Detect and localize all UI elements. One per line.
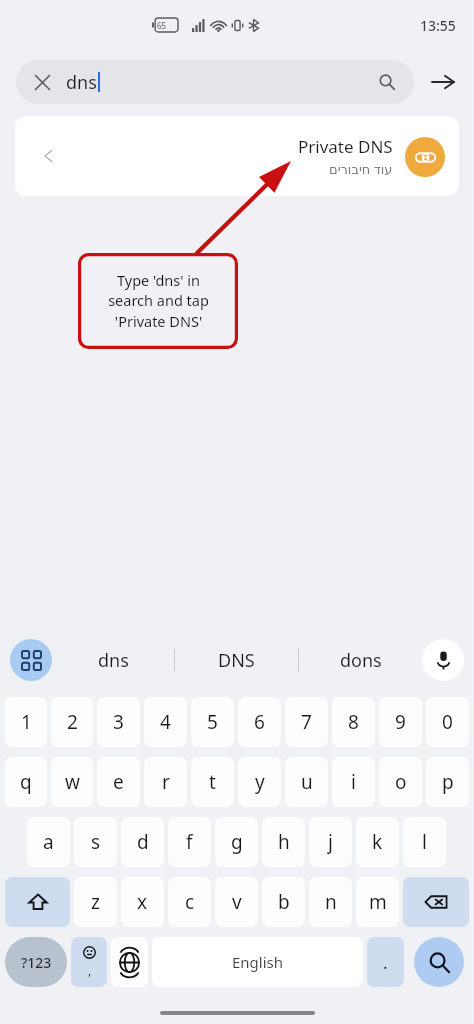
button[interactable]: ?123 <box>5 937 67 987</box>
staticText: עוד חיבורים <box>329 160 393 178</box>
button[interactable]: w <box>51 757 93 807</box>
button[interactable]: Clear <box>16 60 414 104</box>
button[interactable]: l <box>403 817 446 867</box>
button[interactable]: x <box>121 877 164 927</box>
staticText: ?123 <box>21 953 52 972</box>
button[interactable]: Clear <box>30 70 54 94</box>
button[interactable]: o <box>379 757 422 807</box>
staticText: a <box>43 829 54 855</box>
button[interactable]: 3 <box>97 697 140 747</box>
button[interactable]: DNS <box>175 628 298 692</box>
staticText: y <box>255 769 265 795</box>
staticText: o <box>395 769 407 795</box>
button[interactable]: b <box>262 877 305 927</box>
staticText: d <box>137 829 149 855</box>
staticText: . <box>383 951 388 974</box>
staticText: c <box>185 889 195 915</box>
button[interactable]: Change language <box>111 937 148 987</box>
other: Back <box>37 144 61 168</box>
button[interactable]: Search <box>414 937 464 987</box>
button[interactable]: v <box>215 877 258 927</box>
button[interactable]: h <box>262 817 305 867</box>
button[interactable]: Submit search <box>426 65 460 99</box>
staticText: j <box>328 829 333 855</box>
staticText: v <box>232 889 242 915</box>
button[interactable]: c <box>168 877 211 927</box>
staticText: 4 <box>160 709 171 735</box>
staticText: i <box>351 769 356 795</box>
button[interactable]: s <box>74 817 117 867</box>
staticText: Private DNS <box>298 135 393 158</box>
button[interactable]: Keyboard toolbar <box>10 639 52 681</box>
button[interactable]: t <box>191 757 234 807</box>
button[interactable]: Voice input <box>422 639 464 681</box>
button[interactable]: dons <box>299 628 422 692</box>
button[interactable]: English <box>152 937 363 987</box>
staticText: l <box>422 829 427 855</box>
staticText: Type 'dns' in search and tap 'Private DN… <box>108 270 209 332</box>
button[interactable]: u <box>285 757 328 807</box>
staticText: q <box>20 769 32 795</box>
staticText: u <box>301 769 313 795</box>
button[interactable]: 6 <box>238 697 281 747</box>
button[interactable]: Emoji <box>71 937 107 987</box>
button[interactable]: 7 <box>285 697 328 747</box>
button[interactable]: 0 <box>426 697 469 747</box>
staticText: e <box>113 769 124 795</box>
staticText: 5 <box>207 709 218 735</box>
staticText: f <box>186 829 193 855</box>
staticText: dns <box>66 70 97 95</box>
button[interactable]: q <box>5 757 47 807</box>
staticText: g <box>231 829 243 855</box>
button[interactable]: j <box>309 817 352 867</box>
button[interactable]: r <box>144 757 187 807</box>
staticText: t <box>209 769 216 795</box>
button[interactable]: 4 <box>144 697 187 747</box>
staticText: 3 <box>113 709 124 735</box>
staticText: 6 <box>254 709 265 735</box>
button[interactable]: . <box>367 937 404 987</box>
staticText: p <box>442 769 454 795</box>
button[interactable]: f <box>168 817 211 867</box>
button[interactable]: y <box>238 757 281 807</box>
button[interactable]: n <box>309 877 352 927</box>
button[interactable]: m <box>356 877 399 927</box>
button[interactable]: d <box>121 817 164 867</box>
button[interactable]: Backspace <box>403 877 469 927</box>
staticText: 65 <box>157 20 167 31</box>
button[interactable]: i <box>332 757 375 807</box>
staticText: s <box>91 829 101 855</box>
staticText: m <box>369 889 387 915</box>
button[interactable]: 8 <box>332 697 375 747</box>
button[interactable]: 2 <box>51 697 93 747</box>
button[interactable]: Voice search <box>374 69 400 95</box>
button[interactable]: k <box>356 817 399 867</box>
button[interactable]: dns <box>52 628 174 692</box>
staticText: DNS <box>218 648 255 673</box>
staticText: English <box>232 952 284 972</box>
button[interactable]: 1 <box>5 697 47 747</box>
button[interactable]: p <box>426 757 469 807</box>
staticText: z <box>91 889 100 915</box>
staticText: 2 <box>67 709 78 735</box>
staticText: 8 <box>348 709 359 735</box>
staticText: 1 <box>21 709 32 735</box>
button[interactable]: e <box>97 757 140 807</box>
staticText: dons <box>340 648 382 673</box>
staticText: dns <box>98 648 129 673</box>
button[interactable]: 9 <box>379 697 422 747</box>
button[interactable]: g <box>215 817 258 867</box>
staticText: r <box>162 769 170 795</box>
button[interactable]: Back <box>15 116 459 196</box>
button[interactable]: 5 <box>191 697 234 747</box>
staticText: 0 <box>442 709 453 735</box>
staticText: x <box>137 889 148 915</box>
staticText: 7 <box>301 709 312 735</box>
staticText: h <box>278 829 290 855</box>
staticText: 9 <box>395 709 406 735</box>
button[interactable]: z <box>74 877 117 927</box>
button[interactable]: Shift <box>5 877 70 927</box>
staticText: n <box>325 889 337 915</box>
button[interactable]: Private DNS link <box>405 137 445 177</box>
button[interactable]: a <box>27 817 70 867</box>
